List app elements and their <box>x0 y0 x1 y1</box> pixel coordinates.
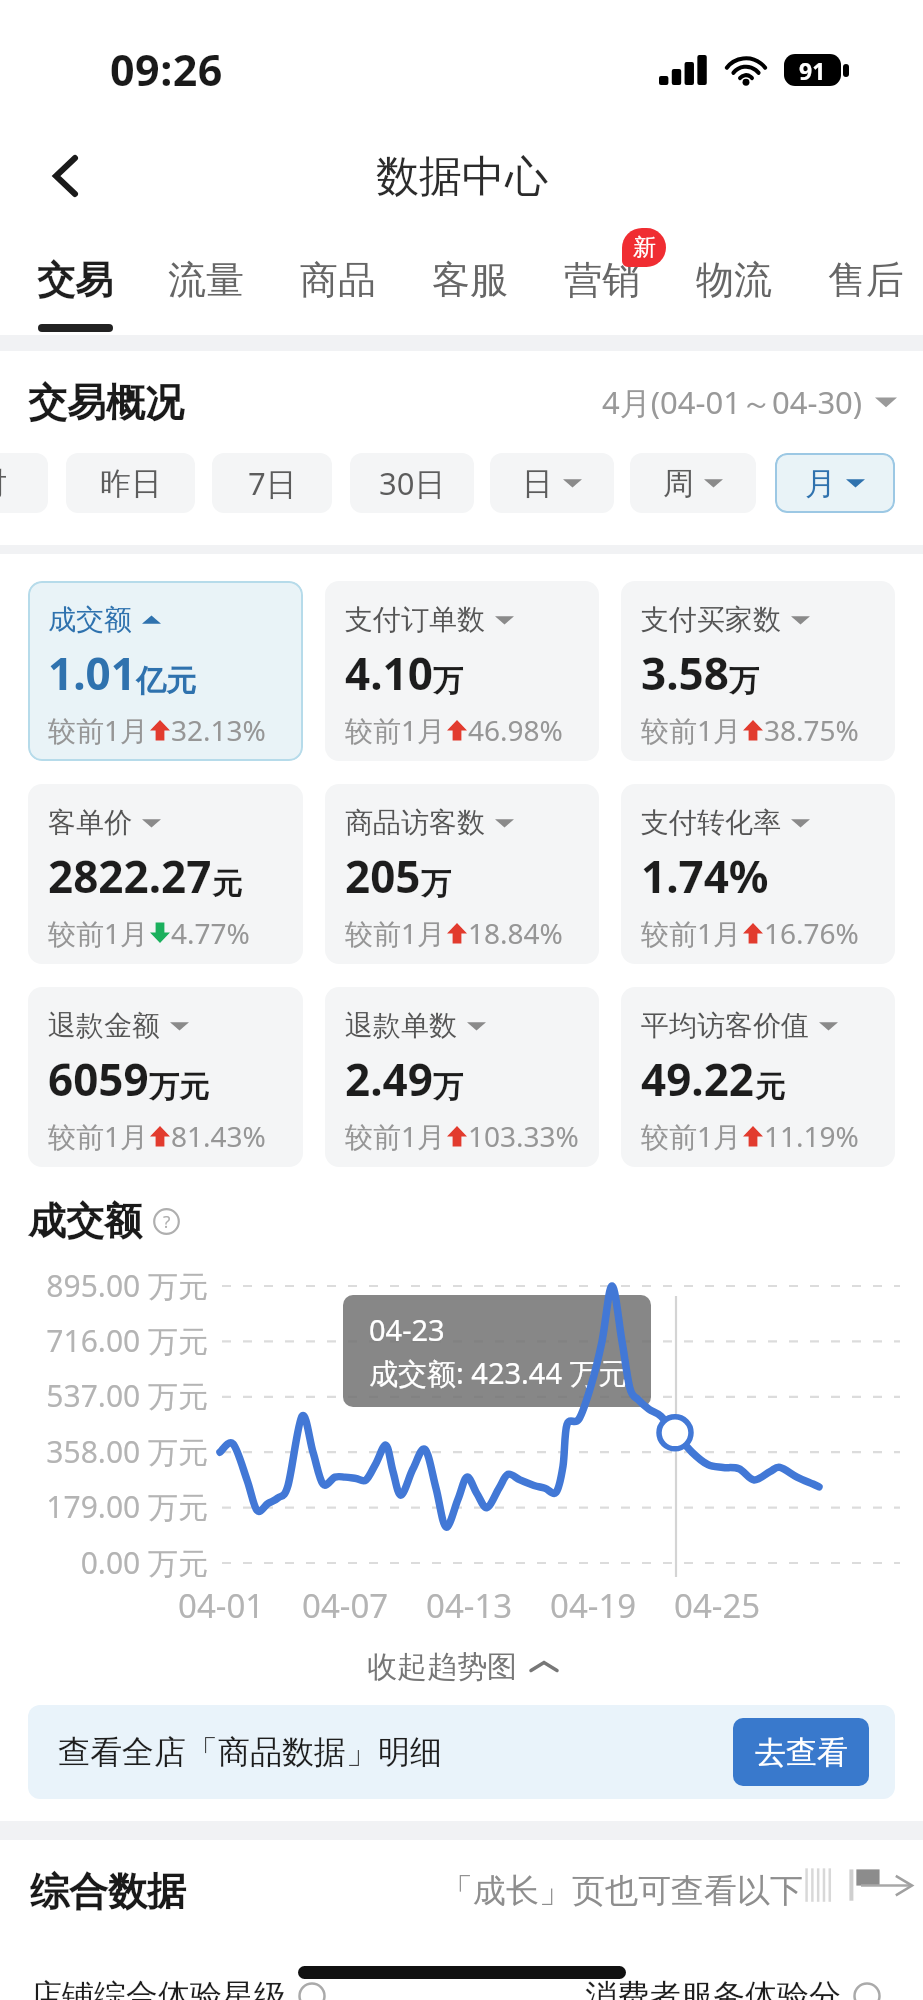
staticText: 38.75% <box>764 711 859 749</box>
staticText: 537.00 万元 <box>46 1375 208 1416</box>
staticText: 09:26 <box>110 40 223 99</box>
button[interactable]: 7日 <box>212 453 332 513</box>
staticText: 较前1月 <box>345 711 446 749</box>
button[interactable]: 物流 <box>659 228 791 335</box>
staticText: 较前1月 <box>345 1117 446 1155</box>
button[interactable]: 查看全店「商品数据」明细 <box>28 1705 895 1799</box>
staticText: 支付买家数 <box>641 602 781 637</box>
staticText: 售后 <box>828 256 904 304</box>
button[interactable]: 商品 <box>263 228 395 335</box>
button[interactable]: Info <box>153 1208 180 1235</box>
staticText: 较前1月 <box>48 914 149 952</box>
staticText: 支付订单数 <box>345 602 485 637</box>
staticText: 205 <box>345 846 421 906</box>
staticText: 2822.27 <box>48 846 212 906</box>
staticText: 0.00 万元 <box>80 1542 208 1583</box>
staticText: 2.49 <box>345 1049 433 1109</box>
staticText: 客单价 <box>48 805 132 840</box>
staticText: 较前1月 <box>641 711 742 749</box>
staticText: 11.19% <box>764 1117 859 1155</box>
button[interactable]: 时 <box>0 453 48 513</box>
staticText: 04-13 <box>426 1583 513 1628</box>
button[interactable]: Select date range <box>602 381 897 423</box>
button[interactable]: 流量 <box>131 228 263 335</box>
staticText: 91 <box>799 55 826 86</box>
staticText: 「成长」页也可查看以下 <box>440 1870 803 1912</box>
button[interactable]: Back <box>26 136 106 216</box>
staticText: 商品 <box>300 256 376 304</box>
staticText: 04-25 <box>674 1583 761 1628</box>
button[interactable]: 客单价 <box>28 784 303 964</box>
staticText: 04-07 <box>302 1583 389 1628</box>
staticText: 店铺综合体验星级 <box>30 1976 286 2000</box>
button[interactable]: 周 <box>630 453 756 513</box>
staticText: 3.58 <box>641 643 729 703</box>
staticText: ? <box>163 1210 171 1233</box>
button[interactable]: 营销 <box>527 228 659 335</box>
staticText: 万 <box>729 662 759 700</box>
staticText: 6059 <box>48 1049 149 1109</box>
staticText: 04-01 <box>178 1583 265 1628</box>
button[interactable]: 支付转化率 <box>621 784 895 964</box>
button[interactable]: 退款金额 <box>28 987 303 1167</box>
staticText: 万 <box>433 662 463 700</box>
staticText: 客服 <box>432 256 508 304</box>
staticText: 周 <box>663 464 694 503</box>
staticText: 81.43% <box>171 1117 266 1155</box>
staticText: 万元 <box>149 1068 209 1106</box>
staticText: 较前1月 <box>48 711 149 749</box>
button[interactable]: 支付买家数 <box>621 581 895 761</box>
staticText: 去查看 <box>755 1733 848 1772</box>
staticText: 收起趋势图 <box>367 1648 517 1686</box>
staticText: 新 <box>633 233 656 262</box>
staticText: 亿元 <box>136 662 196 700</box>
staticText: 营销 <box>564 256 640 304</box>
staticText: 较前1月 <box>641 914 742 952</box>
button[interactable]: 退款单数 <box>325 987 599 1167</box>
button[interactable]: 商品访客数 <box>325 784 599 964</box>
staticText: 退款金额 <box>48 1008 160 1043</box>
staticText: 1.01 <box>48 643 136 703</box>
staticText: 平均访客价值 <box>641 1008 809 1043</box>
staticText: 30日 <box>379 462 446 504</box>
button[interactable]: 支付订单数 <box>325 581 599 761</box>
button[interactable]: 30日 <box>350 453 474 513</box>
staticText: 16.76% <box>764 914 859 952</box>
staticText: 综合数据 <box>30 1867 186 1916</box>
staticText: 商品访客数 <box>345 805 485 840</box>
button[interactable]: 日 <box>490 453 614 513</box>
button[interactable]: 去查看 <box>733 1718 869 1786</box>
staticText: 成交额: 423.44 万元 <box>369 1353 628 1393</box>
staticText: 716.00 万元 <box>46 1320 208 1361</box>
staticText: 较前1月 <box>48 1117 149 1155</box>
staticText: 4.77% <box>171 914 250 952</box>
staticText: 日 <box>522 464 553 503</box>
button[interactable]: 月 <box>775 453 895 513</box>
staticText: 万 <box>421 865 451 903</box>
staticText: 较前1月 <box>345 914 446 952</box>
staticText: 退款单数 <box>345 1008 457 1043</box>
staticText: 04-19 <box>550 1583 637 1628</box>
staticText: 46.98% <box>468 711 563 749</box>
button[interactable]: 昨日 <box>66 453 195 513</box>
button[interactable]: 售后 <box>791 228 923 335</box>
staticText: 较前1月 <box>641 1117 742 1155</box>
staticText: 昨日 <box>100 464 162 503</box>
staticText: 查看全店「商品数据」明细 <box>58 1732 442 1772</box>
staticText: 万 <box>433 1068 463 1106</box>
staticText: 179.00 万元 <box>46 1486 208 1527</box>
staticText: 月 <box>805 464 836 503</box>
staticText: 103.33% <box>468 1117 579 1155</box>
button[interactable]: 交易 <box>0 228 131 335</box>
staticText: 流量 <box>168 256 244 304</box>
staticText: 元 <box>755 1068 785 1106</box>
button[interactable]: 客服 <box>395 228 527 335</box>
staticText: 元 <box>212 865 242 903</box>
button[interactable]: 平均访客价值 <box>621 987 895 1167</box>
button[interactable]: 收起趋势图 <box>0 1645 923 1689</box>
staticText: 358.00 万元 <box>46 1431 208 1472</box>
staticText: 交易概况 <box>28 378 184 427</box>
button[interactable]: 成交额 <box>28 581 303 761</box>
staticText: 7日 <box>248 462 297 504</box>
staticText: 4.10 <box>345 643 433 703</box>
